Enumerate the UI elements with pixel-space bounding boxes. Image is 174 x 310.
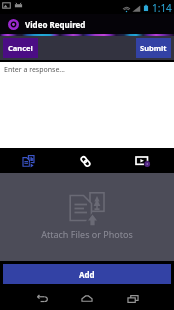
staticText: Enter a response... — [4, 65, 65, 75]
staticText: Video Required — [25, 19, 86, 30]
button[interactable]: Attach Files or Photos — [0, 173, 174, 261]
button[interactable]: Back — [31, 288, 53, 310]
staticText: Submit — [140, 43, 167, 53]
button[interactable]: Cancel — [3, 38, 38, 58]
button[interactable]: Documents — [16, 149, 40, 173]
staticText: 1:14 — [152, 1, 172, 15]
button[interactable]: Home — [76, 288, 98, 310]
button[interactable]: Enter a response... — [0, 62, 174, 148]
staticText: Add — [79, 269, 95, 280]
staticText: Attach Files or Photos — [41, 228, 133, 240]
button[interactable]: Add — [3, 264, 171, 284]
staticText: Cancel — [8, 43, 33, 53]
button[interactable]: Recents — [122, 288, 144, 310]
button[interactable]: Submit — [136, 38, 171, 58]
button[interactable]: Video — [132, 150, 154, 172]
button[interactable]: Link — [74, 150, 96, 172]
